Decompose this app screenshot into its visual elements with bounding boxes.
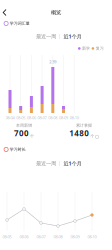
staticText: 最近一周	[36, 33, 56, 40]
staticText: 08-09	[59, 115, 68, 120]
staticText: 08-07	[38, 115, 47, 120]
staticText: 08-10	[87, 234, 96, 239]
staticText: 个	[30, 134, 34, 138]
button[interactable]: 最近一周	[33, 159, 59, 168]
staticText: 08-04	[5, 115, 14, 120]
button[interactable]: 近1个月	[59, 159, 85, 168]
staticText: 复习	[96, 46, 104, 51]
button[interactable]: Back	[0, 0, 16, 25]
staticText: 概览	[51, 9, 61, 16]
staticText: 08-06	[27, 115, 36, 120]
staticText: 08-08	[53, 234, 62, 239]
staticText: 08-08	[48, 115, 57, 120]
staticText: 最近一周	[36, 160, 56, 167]
staticText: 2.39	[49, 59, 56, 64]
staticText: 08-10	[70, 115, 79, 120]
staticText: 本周新增	[16, 123, 32, 128]
staticText: 08-05	[16, 115, 25, 120]
staticText: 1480	[69, 128, 89, 138]
staticText: 近1个月	[63, 33, 81, 40]
staticText: 新学	[82, 46, 90, 51]
staticText: 学习时长	[10, 147, 26, 152]
staticText: 学习词汇量	[10, 21, 30, 26]
staticText: 累计掌握	[76, 123, 92, 128]
staticText: 08-07	[36, 234, 45, 239]
staticText: 近1个月	[63, 160, 81, 167]
staticText: 08-09	[70, 234, 79, 239]
button[interactable]: 近1个月	[59, 32, 85, 41]
button[interactable]: 最近一周	[33, 32, 59, 41]
staticText: 08-06	[19, 234, 28, 239]
staticText: 08-05	[2, 234, 11, 239]
staticText: 个	[90, 134, 94, 138]
staticText: 700	[14, 128, 29, 138]
